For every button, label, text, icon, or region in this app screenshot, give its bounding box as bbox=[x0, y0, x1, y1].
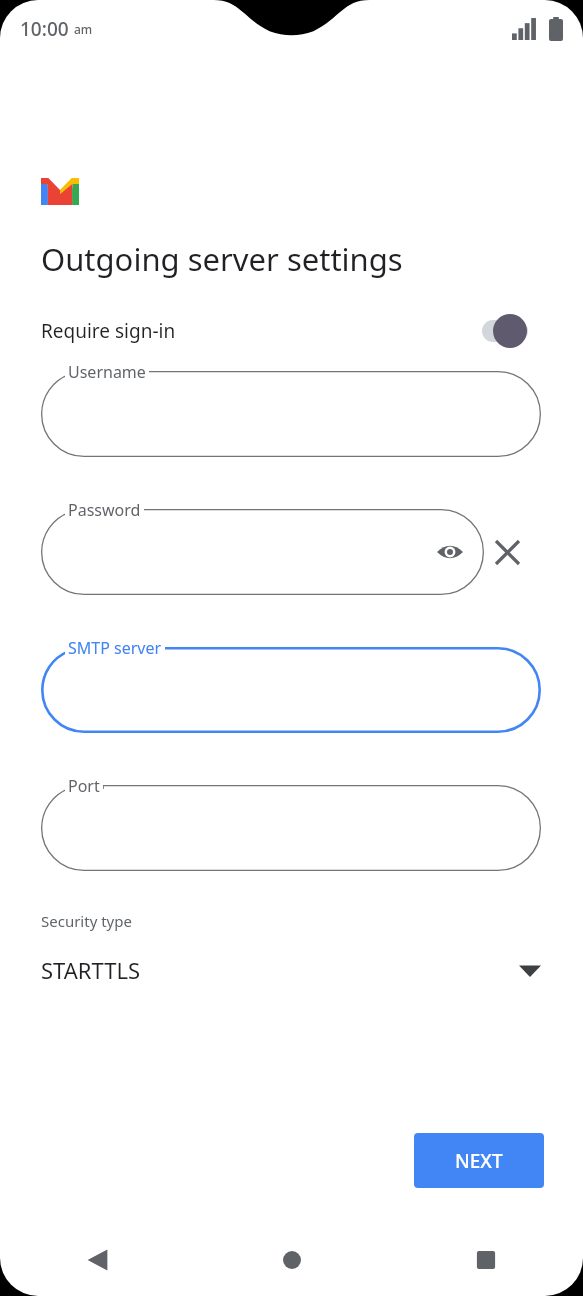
button[interactable]: SMTP server bbox=[41, 647, 541, 733]
button[interactable]: Clear bbox=[484, 529, 530, 575]
button[interactable]: Security type bbox=[41, 911, 541, 985]
button[interactable]: Show password bbox=[430, 532, 470, 572]
button[interactable]: Home bbox=[195, 1224, 389, 1296]
button[interactable]: Password bbox=[41, 509, 484, 595]
staticText: Username bbox=[68, 361, 146, 383]
button[interactable]: Require sign-in bbox=[41, 308, 542, 354]
staticText: am bbox=[74, 21, 93, 37]
button[interactable]: NEXT bbox=[414, 1133, 544, 1188]
button[interactable]: Recents bbox=[389, 1224, 583, 1296]
staticText: Require sign-in bbox=[41, 318, 176, 344]
staticText: Outgoing server settings bbox=[41, 238, 403, 280]
button[interactable]: Username bbox=[41, 371, 541, 457]
staticText: SMTP server bbox=[68, 637, 162, 659]
staticText: Security type bbox=[41, 911, 132, 931]
staticText: Password bbox=[68, 499, 141, 521]
staticText: NEXT bbox=[455, 1148, 503, 1174]
staticText: 10:00 bbox=[20, 16, 69, 42]
button[interactable]: Port bbox=[41, 785, 541, 871]
staticText: Port bbox=[68, 775, 100, 797]
button[interactable]: Back bbox=[0, 1224, 195, 1296]
staticText: STARTTLS bbox=[41, 955, 141, 985]
